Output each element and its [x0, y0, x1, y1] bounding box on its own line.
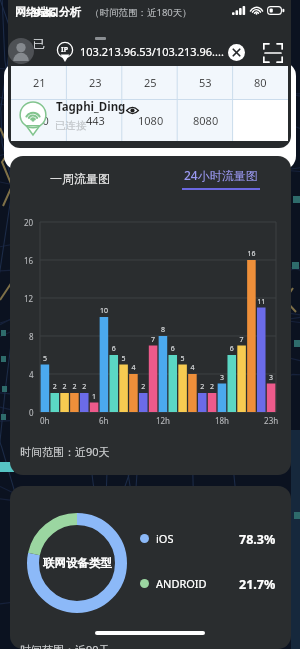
staticText: 53: [199, 75, 212, 90]
staticText: iOS: [156, 531, 174, 545]
staticText: 25: [144, 75, 157, 90]
button[interactable]: Scan QR code: [262, 42, 284, 64]
staticText: 21.7%: [239, 576, 276, 590]
staticText: 一周流量图: [50, 171, 110, 186]
staticText: 80: [254, 75, 267, 90]
button[interactable]: 24小时流量图: [150, 159, 291, 197]
staticText: 110: [30, 113, 49, 128]
staticText: 联网设备类型: [43, 556, 112, 570]
staticText: 1080: [138, 113, 164, 128]
button[interactable]: Clear text: [228, 44, 245, 61]
staticText: （时间范围：近180天）: [90, 6, 192, 19]
staticText: 21: [33, 75, 46, 90]
staticText: 23: [89, 75, 102, 90]
button[interactable]: Site information: [55, 42, 75, 62]
staticText: 网络端口分析: [15, 5, 81, 19]
staticText: Tagphi_Ding: [56, 99, 126, 115]
staticText: 时间范围：近90天: [20, 642, 110, 649]
button[interactable]: 一周流量图: [10, 159, 150, 197]
button[interactable]: Account: [8, 38, 34, 64]
staticText: ANDROID: [156, 576, 207, 590]
staticText: 24小时流量图: [184, 167, 258, 183]
staticText: IP: [61, 45, 69, 55]
button[interactable]: iOS: [140, 531, 285, 545]
staticText: 443: [86, 113, 105, 128]
staticText: 78.3%: [239, 531, 276, 545]
staticText: 时间范围：近90天: [20, 444, 110, 459]
button[interactable]: ANDROID: [140, 576, 285, 590]
staticText: 103.213.96.53/103.213.96....: [80, 44, 224, 59]
staticText: 8080: [193, 113, 219, 128]
staticText: 已: [33, 36, 45, 51]
staticText: 已连接: [55, 119, 87, 132]
staticText: 9:36: [34, 5, 56, 20]
